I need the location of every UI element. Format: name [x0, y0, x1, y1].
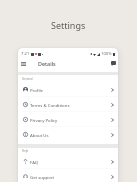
- button[interactable]: Messages: [109, 59, 118, 68]
- button[interactable]: Privacy Policy: [18, 112, 118, 127]
- staticText: 100%: [101, 51, 112, 57]
- button[interactable]: FAQ: [18, 154, 118, 169]
- staticText: Settings: [51, 19, 86, 31]
- button[interactable]: Get support: [18, 169, 118, 182]
- staticText: Terms & Conditions: [30, 102, 70, 108]
- button[interactable]: Terms & Conditions: [18, 97, 118, 112]
- button[interactable]: About Us: [18, 127, 118, 142]
- staticText: 7:21: [21, 51, 30, 57]
- button[interactable]: Profile: [18, 82, 118, 97]
- staticText: Privacy Policy: [30, 117, 58, 123]
- button[interactable]: Open navigation menu: [19, 59, 28, 68]
- staticText: Profile: [30, 87, 44, 93]
- staticText: Get support: [30, 174, 55, 180]
- staticText: General: [22, 77, 33, 81]
- staticText: About Us: [30, 132, 49, 138]
- staticText: Details: [38, 60, 56, 67]
- staticText: Help: [22, 149, 29, 153]
- staticText: FAQ: [30, 159, 39, 165]
